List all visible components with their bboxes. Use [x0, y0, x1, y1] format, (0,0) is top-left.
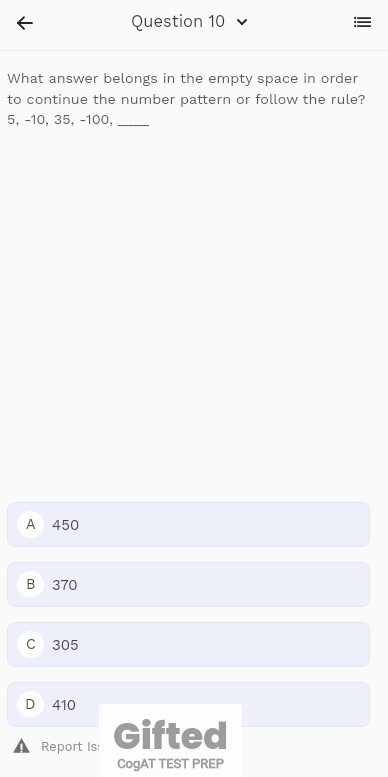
- staticText: A: [26, 516, 36, 533]
- button[interactable]: B: [7, 562, 370, 607]
- staticText: Question 10: [131, 12, 226, 31]
- staticText: Gifted: [113, 711, 229, 762]
- staticText: 370: [52, 576, 78, 594]
- staticText: Report Issue: [41, 739, 120, 754]
- button[interactable]: Report Issue: [0, 735, 128, 758]
- staticText: 410: [52, 696, 77, 714]
- staticText: What answer belongs in the empty space i…: [7, 70, 370, 127]
- button[interactable]: Back: [4, 3, 44, 43]
- button[interactable]: D: [7, 682, 370, 727]
- staticText: 305: [52, 636, 79, 654]
- staticText: D: [25, 696, 36, 713]
- button[interactable]: A: [7, 502, 370, 547]
- button[interactable]: Question 10: [127, 9, 251, 34]
- staticText: C: [26, 636, 36, 653]
- staticText: B: [26, 576, 36, 593]
- button[interactable]: Question list: [345, 5, 379, 39]
- staticText: 450: [52, 516, 80, 534]
- staticText: CogAT TEST PREP: [117, 756, 224, 771]
- button[interactable]: C: [7, 622, 370, 667]
